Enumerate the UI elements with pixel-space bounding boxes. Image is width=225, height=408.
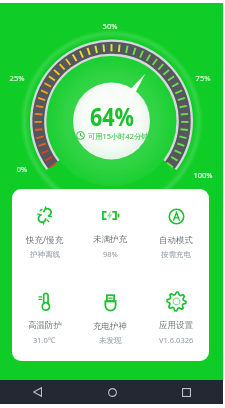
staticText: V1.6.0326 [159,335,194,345]
button[interactable]: Back [0,380,75,404]
staticText: 31.0℃ [33,335,56,345]
staticText: 护神离线 [30,250,60,259]
staticText: 未满护充 [93,234,127,245]
button[interactable]: 高温防护 [12,275,77,361]
staticText: 98% [103,249,118,259]
button[interactable]: Recent apps [149,380,223,404]
staticText: 自动模式 [159,235,193,246]
staticText: 50% [85,21,135,31]
staticText: 应用设置 [159,320,193,331]
staticText: 可用15小时42分钟 [88,131,149,141]
staticText: 25% [0,73,42,83]
staticText: 高温防护 [28,320,62,331]
button[interactable]: 未满护充 [77,189,143,275]
button[interactable]: Home [75,380,149,404]
button[interactable]: 充电护神 [77,275,143,361]
staticText: 75% [178,73,225,83]
staticText: 充电护神 [93,321,127,332]
staticText: 未发现 [99,336,122,345]
staticText: 100% [178,170,225,180]
staticText: 按需充电 [161,250,191,259]
staticText: 快充/慢充 [26,234,64,246]
staticText: 0% [0,164,47,174]
button[interactable]: 快充/慢充 [12,189,77,275]
staticText: 64% [90,99,134,129]
button[interactable]: 应用设置 [143,275,209,361]
button[interactable]: 自动模式 [143,189,209,275]
